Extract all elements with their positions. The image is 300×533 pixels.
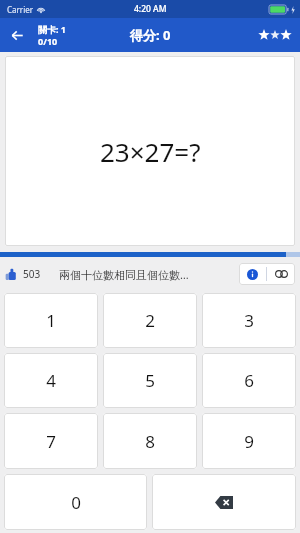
staticText: 0 (71, 491, 81, 514)
staticText: Carrier (7, 4, 34, 15)
staticText: 關卡: 1 (38, 23, 67, 35)
staticText: 5 (145, 369, 155, 392)
button[interactable]: Backspace (152, 474, 296, 530)
staticText: 23×27=? (100, 134, 201, 169)
staticText: 1 (46, 309, 56, 332)
button[interactable]: 8 (103, 413, 197, 469)
staticText: 9 (244, 430, 254, 453)
button[interactable]: 7 (4, 413, 98, 469)
button[interactable]: 兩個十位數相同且個位數… (59, 267, 235, 282)
button[interactable]: 1 (4, 293, 98, 348)
button[interactable]: 503 (5, 267, 41, 281)
button[interactable]: 5 (103, 353, 197, 408)
button[interactable]: 2 (103, 293, 197, 348)
staticText: 7 (46, 430, 56, 453)
button[interactable]: 3 (202, 293, 296, 348)
staticText: 6 (244, 369, 254, 392)
button[interactable]: 4 (4, 353, 98, 408)
button[interactable]: 6 (202, 353, 296, 408)
staticText: 503 (23, 267, 41, 281)
button[interactable]: Back (0, 18, 34, 52)
button[interactable]: 關卡: 1 (38, 23, 67, 47)
button[interactable]: 0 (4, 474, 147, 530)
staticText: 得分: 0 (130, 26, 171, 44)
staticText: 4 (46, 369, 56, 392)
staticText: 4:20 AM (134, 3, 167, 15)
button[interactable]: Stars (258, 29, 292, 41)
button[interactable]: Unlimited (267, 263, 295, 285)
button[interactable]: Info (239, 263, 266, 285)
staticText: 3 (244, 309, 254, 332)
staticText: 8 (145, 430, 155, 453)
staticText: 0/10 (38, 35, 58, 47)
button[interactable]: 9 (202, 413, 296, 469)
staticText: 2 (145, 309, 155, 332)
